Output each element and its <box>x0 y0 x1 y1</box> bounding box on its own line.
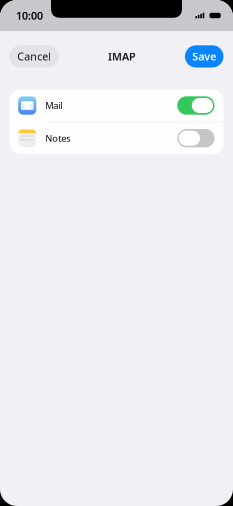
button[interactable]: Notes <box>9 122 223 154</box>
staticText: 10:00 <box>16 8 43 23</box>
button[interactable]: Mail <box>9 89 223 121</box>
staticText: Mail <box>45 99 62 112</box>
staticText: Save <box>192 49 216 63</box>
staticText: IMAP <box>108 49 136 63</box>
button[interactable]: Cancel <box>9 45 59 67</box>
button[interactable]: Save <box>185 45 223 67</box>
staticText: Notes <box>45 132 70 144</box>
staticText: Cancel <box>17 49 51 63</box>
